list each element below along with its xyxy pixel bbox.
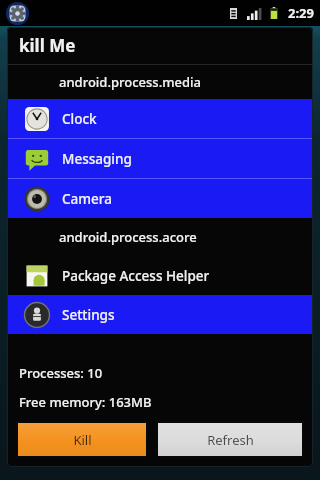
staticText: Package Access Helper <box>62 267 210 285</box>
staticText: android.process.acore <box>59 228 197 246</box>
button[interactable]: Clock <box>7 99 313 138</box>
staticText: Clock <box>62 110 97 128</box>
button[interactable]: Kill Me app notification <box>7 3 28 24</box>
button[interactable]: Messaging <box>7 139 313 178</box>
staticText: Kill <box>73 431 92 449</box>
staticText: 2:29 <box>288 4 314 22</box>
button[interactable]: android.process.media <box>7 65 313 99</box>
button[interactable]: Kill <box>18 423 146 456</box>
staticText: android.process.media <box>59 73 201 91</box>
staticText: Camera <box>62 190 112 208</box>
staticText: kill Me <box>19 34 76 57</box>
staticText: Refresh <box>207 431 254 449</box>
button[interactable]: Camera <box>7 179 313 218</box>
staticText: Settings <box>62 306 115 324</box>
staticText: Messaging <box>62 150 132 168</box>
staticText: Processes: 10 <box>19 364 103 382</box>
button[interactable]: Refresh <box>158 423 302 456</box>
staticText: Free memory: 163MB <box>19 393 152 411</box>
button[interactable]: Settings <box>7 295 313 334</box>
button[interactable]: Package Access Helper <box>7 256 313 295</box>
button[interactable]: android.process.acore <box>7 218 313 256</box>
